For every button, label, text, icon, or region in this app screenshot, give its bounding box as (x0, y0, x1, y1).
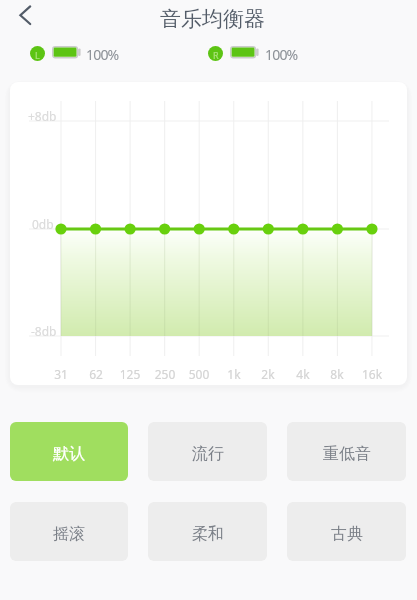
staticText: L (35, 49, 40, 61)
staticText: 62 (78, 366, 114, 382)
staticText: 100% (265, 45, 298, 64)
staticText: 音乐均衡器 (160, 6, 265, 32)
button[interactable]: 250 Hz band (156, 219, 174, 239)
button[interactable]: 流行 (148, 422, 267, 481)
button[interactable]: 摇滚 (10, 502, 128, 561)
staticText: 流行 (192, 444, 224, 464)
staticText: 2k (250, 366, 286, 382)
staticText: 8k (319, 366, 355, 382)
staticText: 125 (112, 366, 148, 382)
button[interactable]: 62 Hz band (87, 219, 105, 239)
staticText: 柔和 (192, 524, 224, 544)
button[interactable]: 2k Hz band (259, 219, 277, 239)
button[interactable]: 16k Hz band (363, 219, 381, 239)
staticText: 31 (43, 366, 79, 382)
button[interactable]: Back (4, 0, 46, 31)
button[interactable]: 柔和 (148, 502, 267, 561)
staticText: 250 (147, 366, 183, 382)
staticText: 1k (216, 366, 252, 382)
staticText: 古典 (331, 524, 363, 544)
button[interactable]: 500 Hz band (190, 219, 208, 239)
button[interactable]: 古典 (287, 502, 406, 561)
staticText: 重低音 (323, 444, 371, 464)
staticText: 默认 (53, 444, 85, 464)
button[interactable]: 默认 (10, 422, 128, 481)
button[interactable]: 1k Hz band (225, 219, 243, 239)
button[interactable]: 重低音 (287, 422, 406, 481)
button[interactable]: 125 Hz band (121, 219, 139, 239)
staticText: R (213, 49, 219, 61)
button[interactable]: 4k Hz band (294, 219, 312, 239)
staticText: +8db (28, 108, 57, 124)
staticText: 500 (181, 366, 217, 382)
staticText: 16k (354, 366, 390, 382)
button[interactable]: 31 Hz band (52, 219, 70, 239)
staticText: 4k (285, 366, 321, 382)
staticText: -8db (31, 323, 57, 339)
button[interactable]: 8k Hz band (328, 219, 346, 239)
staticText: 0db (32, 216, 54, 232)
staticText: 100% (86, 45, 119, 64)
staticText: 摇滚 (53, 524, 85, 544)
